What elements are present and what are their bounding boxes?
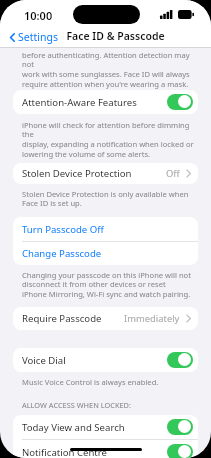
button[interactable]: Turn Passcode Off xyxy=(13,217,198,241)
button[interactable]: Require Passcode xyxy=(13,307,198,330)
button[interactable]: Voice Dial xyxy=(13,348,198,372)
button[interactable]: Toggle on xyxy=(167,419,193,435)
staticText: iPhone will check for attention before d… xyxy=(22,120,197,160)
button[interactable]: Toggle on xyxy=(167,444,193,458)
staticText: Turn Passcode Off xyxy=(22,223,104,236)
staticText: Off xyxy=(166,167,180,180)
staticText: Require Passcode xyxy=(22,312,102,325)
button[interactable]: Today View and Search xyxy=(13,415,198,439)
staticText: Voice Dial xyxy=(22,354,66,367)
button[interactable]: Attention-Aware Features xyxy=(13,90,198,114)
staticText: Immediately xyxy=(124,312,180,325)
staticText: Music Voice Control is always enabled. xyxy=(22,377,159,387)
button[interactable]: Notification Centre xyxy=(13,440,198,458)
button[interactable]: Settings xyxy=(8,29,60,45)
button[interactable]: Stolen Device Protection xyxy=(13,163,198,184)
button[interactable]: Toggle on xyxy=(167,94,193,110)
button[interactable]: Toggle on xyxy=(167,352,193,368)
staticText: before authenticating. Attention detecti… xyxy=(22,50,197,90)
staticText: 10:00 xyxy=(24,8,53,23)
staticText: Stolen Device Protection xyxy=(22,167,132,180)
staticText: ALLOW ACCESS WHEN LOCKED: xyxy=(22,400,131,410)
staticText: Change Passcode xyxy=(22,247,102,260)
staticText: Today View and Search xyxy=(22,421,125,434)
staticText: Face ID & Passcode xyxy=(66,29,165,43)
staticText: Notification Centre xyxy=(22,446,108,458)
staticText: Changing your passcode on this iPhone wi… xyxy=(22,270,191,300)
staticText: Attention-Aware Features xyxy=(22,96,137,109)
button[interactable]: Change Passcode xyxy=(13,242,198,265)
staticText: Settings xyxy=(18,30,58,44)
staticText: Stolen Device Protection is only availab… xyxy=(22,189,189,209)
